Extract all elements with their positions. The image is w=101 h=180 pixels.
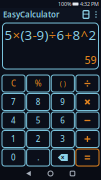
button[interactable]: Plus bbox=[76, 130, 99, 147]
staticText: . bbox=[37, 152, 39, 163]
staticText: ( ) bbox=[60, 79, 66, 88]
button[interactable]: 8 bbox=[27, 93, 50, 110]
staticText: 5 bbox=[4, 26, 12, 44]
button[interactable]: Recents bbox=[61, 167, 83, 180]
button[interactable]: Backspace bbox=[51, 149, 74, 166]
staticText: + bbox=[64, 26, 72, 44]
button[interactable]: Back bbox=[17, 167, 39, 180]
button[interactable]: 5 bbox=[27, 112, 50, 129]
staticText: 9) bbox=[36, 26, 48, 44]
button[interactable]: ( ) bbox=[51, 75, 74, 92]
button[interactable]: Equals bbox=[76, 149, 99, 166]
button[interactable]: Minus bbox=[76, 112, 99, 129]
staticText: 3 bbox=[60, 134, 65, 144]
button[interactable]: 3 bbox=[51, 130, 74, 147]
staticText: EasyCalculator bbox=[3, 9, 59, 20]
staticText: (3 bbox=[20, 26, 32, 44]
staticText: ^ bbox=[80, 26, 88, 44]
staticText: 59 bbox=[84, 53, 96, 67]
button[interactable]: 7 bbox=[2, 93, 25, 110]
staticText: 100% bbox=[58, 0, 71, 8]
staticText: 6 bbox=[60, 115, 65, 126]
staticText: 9 bbox=[60, 97, 65, 107]
staticText: % bbox=[35, 78, 42, 89]
staticText: 8 bbox=[36, 97, 41, 107]
button[interactable]: Multiply bbox=[76, 93, 99, 110]
button[interactable]: C bbox=[2, 75, 25, 92]
button[interactable]: Home bbox=[39, 167, 61, 180]
button[interactable]: 2 bbox=[27, 130, 50, 147]
staticText: × bbox=[12, 26, 20, 44]
staticText: 0 bbox=[11, 152, 16, 163]
staticText: - bbox=[32, 26, 36, 44]
button[interactable]: 0 bbox=[2, 149, 25, 166]
staticText: C bbox=[11, 78, 16, 89]
staticText: 6 bbox=[56, 26, 64, 44]
staticText: 1 bbox=[11, 134, 16, 144]
button[interactable]: . bbox=[27, 149, 50, 166]
staticText: 4:32 PM bbox=[80, 0, 99, 8]
button[interactable]: More options bbox=[92, 8, 100, 21]
button[interactable]: Calculator bbox=[80, 8, 92, 21]
staticText: ÷ bbox=[48, 26, 56, 44]
staticText: 2 bbox=[36, 134, 41, 144]
staticText: 4 bbox=[11, 115, 16, 126]
button[interactable]: 1 bbox=[2, 130, 25, 147]
staticText: × bbox=[61, 153, 65, 162]
button[interactable]: 9 bbox=[51, 93, 74, 110]
staticText: 7 bbox=[11, 97, 16, 107]
staticText: 5 bbox=[36, 115, 41, 126]
staticText: 8 bbox=[72, 26, 80, 44]
button[interactable]: % bbox=[27, 75, 50, 92]
button[interactable]: 6 bbox=[51, 112, 74, 129]
button[interactable]: 4 bbox=[2, 112, 25, 129]
staticText: 2 bbox=[88, 26, 96, 44]
button[interactable]: Divide bbox=[76, 75, 99, 92]
